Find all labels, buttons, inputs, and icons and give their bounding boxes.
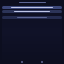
button[interactable]: Selected item [2,6,62,9]
button[interactable]: Item two [2,10,62,13]
button[interactable]: Item three [2,16,62,19]
button[interactable]: Title bar [2,0,62,5]
